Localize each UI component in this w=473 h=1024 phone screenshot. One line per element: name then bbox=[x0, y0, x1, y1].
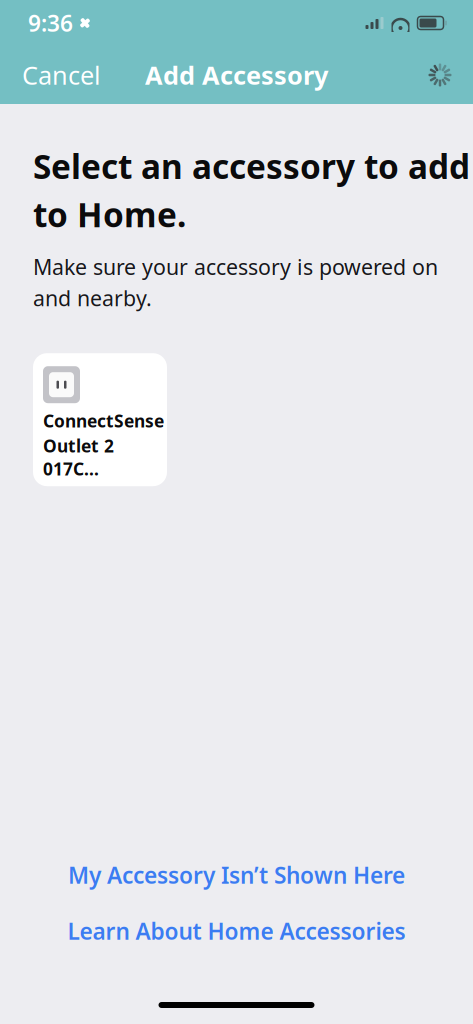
staticText: 9:36 bbox=[28, 8, 73, 38]
staticText: Make sure your accessory is powered on bbox=[33, 252, 438, 281]
staticText: Outlet 2 017C... bbox=[43, 434, 114, 480]
staticText: My Accessory Isn’t Shown Here bbox=[68, 860, 405, 890]
button[interactable]: Cancel bbox=[0, 48, 123, 102]
button[interactable]: ConnectSense bbox=[33, 353, 167, 486]
staticText: and nearby. bbox=[33, 284, 152, 312]
button[interactable]: My Accessory Isn’t Shown Here bbox=[0, 852, 473, 898]
staticText: to Home. bbox=[33, 192, 186, 237]
button[interactable]: Learn About Home Accessories bbox=[0, 908, 473, 954]
staticText: Add Accessory bbox=[145, 58, 328, 92]
staticText: ConnectSense bbox=[43, 409, 164, 432]
staticText: Select an accessory to add bbox=[33, 144, 470, 188]
staticText: Cancel bbox=[22, 58, 101, 92]
button[interactable]: Searching for accessories bbox=[407, 54, 473, 96]
staticText: Learn About Home Accessories bbox=[67, 916, 405, 946]
